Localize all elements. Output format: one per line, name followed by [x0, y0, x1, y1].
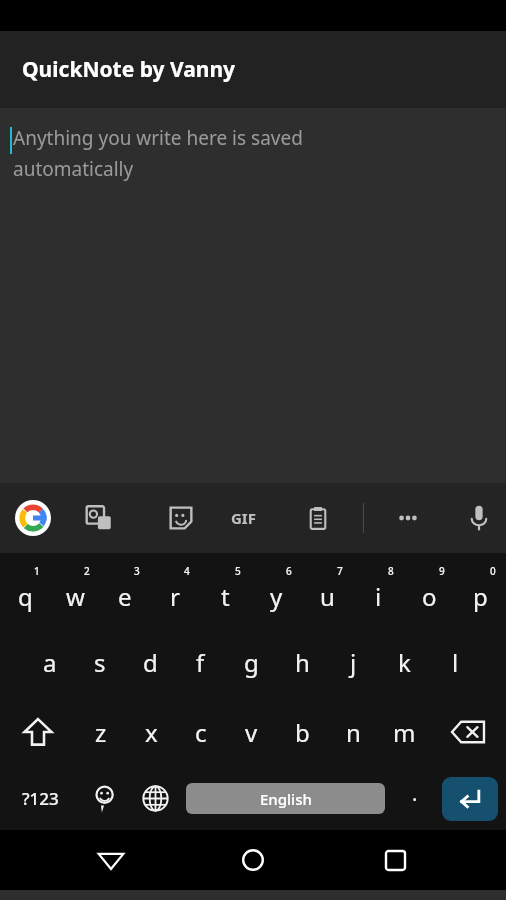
button[interactable]: h: [277, 627, 328, 697]
staticText: t: [221, 580, 230, 613]
button[interactable]: Shift: [0, 697, 76, 767]
button[interactable]: Recent apps: [364, 830, 426, 890]
staticText: 4: [184, 564, 190, 578]
staticText: 6: [286, 564, 292, 578]
button[interactable]: English: [186, 783, 385, 814]
staticText: 0: [490, 564, 496, 578]
button[interactable]: Emoji: [80, 767, 128, 830]
staticText: GIF: [231, 508, 256, 528]
button[interactable]: Change language: [128, 767, 183, 830]
staticText: e: [118, 580, 132, 613]
button[interactable]: x: [126, 697, 176, 767]
staticText: ?123: [22, 787, 59, 810]
button[interactable]: w: [50, 557, 100, 627]
staticText: 9: [439, 564, 445, 578]
button[interactable]: Google search: [12, 497, 54, 539]
staticText: q: [18, 580, 33, 613]
button[interactable]: Voice input: [458, 497, 500, 539]
button[interactable]: g: [226, 627, 277, 697]
staticText: 1: [34, 564, 40, 578]
button[interactable]: p: [455, 557, 506, 627]
button[interactable]: o: [404, 557, 455, 627]
button[interactable]: z: [76, 697, 126, 767]
staticText: k: [398, 646, 411, 679]
staticText: .: [412, 780, 418, 807]
button[interactable]: q: [0, 557, 50, 627]
button[interactable]: u: [302, 557, 353, 627]
staticText: g: [244, 646, 259, 679]
button[interactable]: Anything you write here is saved automat…: [0, 108, 506, 483]
button[interactable]: c: [176, 697, 226, 767]
staticText: x: [145, 716, 158, 749]
staticText: y: [270, 580, 283, 613]
staticText: h: [295, 646, 310, 679]
button[interactable]: Translate: [78, 497, 120, 539]
button[interactable]: k: [379, 627, 430, 697]
staticText: w: [66, 580, 85, 613]
staticText: o: [422, 580, 437, 613]
button[interactable]: d: [125, 627, 175, 697]
staticText: c: [195, 716, 207, 749]
button[interactable]: Home: [222, 830, 284, 890]
button[interactable]: Clipboard: [297, 497, 339, 539]
button[interactable]: Stickers: [160, 497, 202, 539]
button[interactable]: e: [100, 557, 150, 627]
staticText: 8: [388, 564, 394, 578]
staticText: j: [350, 646, 357, 679]
staticText: s: [94, 646, 106, 679]
staticText: English: [260, 789, 312, 809]
button[interactable]: i: [353, 557, 404, 627]
button[interactable]: Back: [80, 830, 142, 890]
button[interactable]: Enter: [442, 777, 498, 821]
staticText: Anything you write here is saved automat…: [13, 125, 391, 181]
staticText: QuickNote by Vanny: [22, 55, 236, 84]
button[interactable]: More options: [387, 497, 429, 539]
button[interactable]: r: [150, 557, 200, 627]
staticText: p: [473, 580, 488, 613]
button[interactable]: m: [379, 697, 430, 767]
button[interactable]: v: [226, 697, 277, 767]
staticText: d: [143, 646, 158, 679]
button[interactable]: Backspace: [430, 697, 506, 767]
staticText: m: [393, 716, 416, 749]
staticText: 7: [337, 564, 343, 578]
button[interactable]: a: [25, 627, 75, 697]
button[interactable]: .: [388, 767, 442, 830]
button[interactable]: b: [277, 697, 328, 767]
button[interactable]: ?123: [0, 767, 80, 830]
staticText: l: [452, 646, 459, 679]
staticText: 5: [235, 564, 241, 578]
staticText: r: [170, 580, 180, 613]
staticText: 2: [84, 564, 90, 578]
staticText: z: [95, 716, 107, 749]
button[interactable]: s: [75, 627, 125, 697]
button[interactable]: l: [430, 627, 481, 697]
button[interactable]: n: [328, 697, 379, 767]
staticText: n: [346, 716, 361, 749]
button[interactable]: f: [175, 627, 226, 697]
button[interactable]: GIF: [222, 497, 264, 539]
button[interactable]: t: [200, 557, 251, 627]
staticText: a: [43, 646, 57, 679]
button[interactable]: j: [328, 627, 379, 697]
staticText: 3: [134, 564, 140, 578]
staticText: i: [375, 580, 382, 613]
staticText: b: [295, 716, 310, 749]
staticText: f: [196, 646, 205, 679]
staticText: v: [245, 716, 258, 749]
staticText: u: [320, 580, 335, 613]
button[interactable]: y: [251, 557, 302, 627]
